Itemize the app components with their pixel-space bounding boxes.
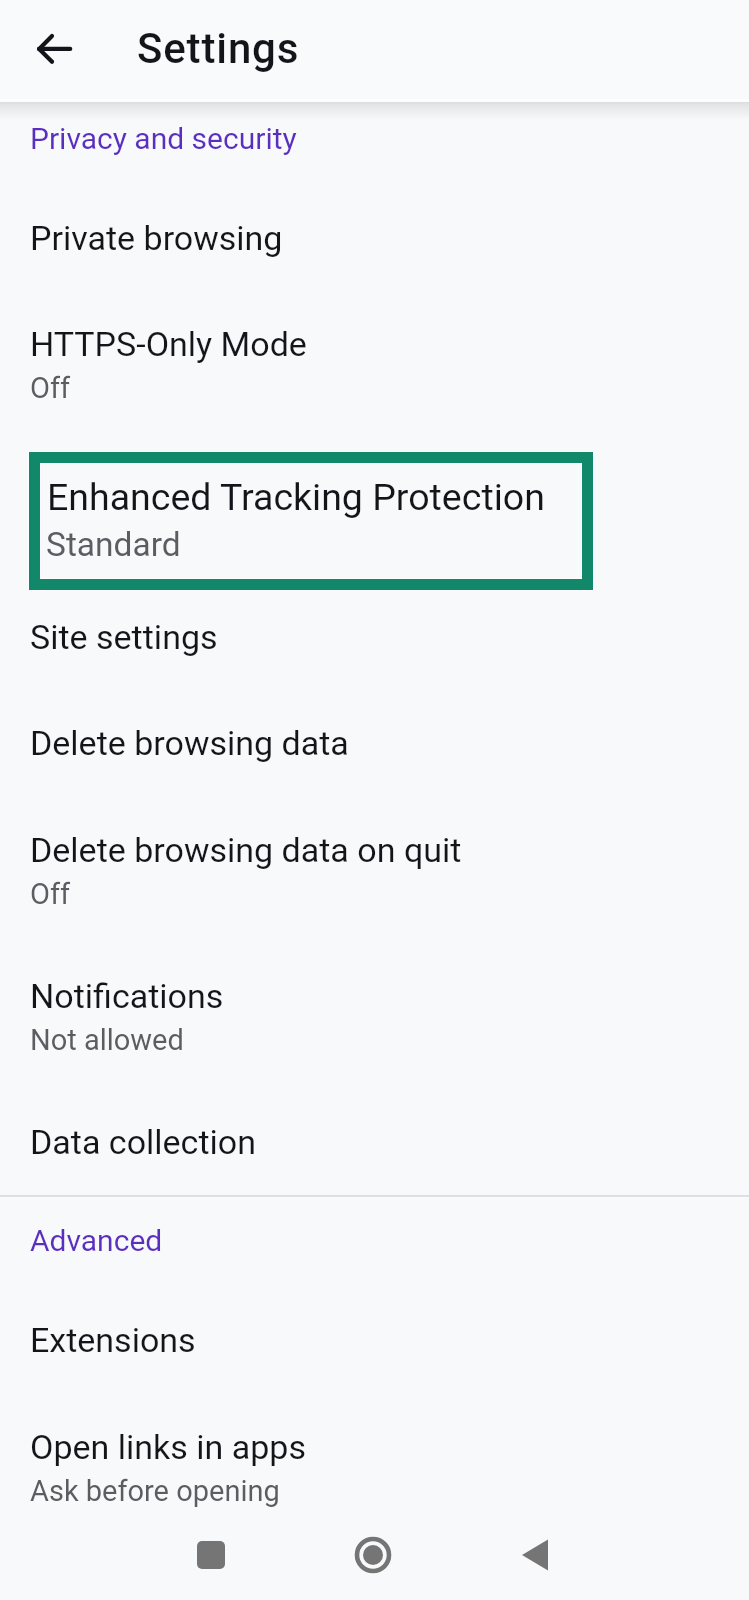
button[interactable]: Enhanced Tracking Protection <box>28 451 594 591</box>
button[interactable]: Home <box>323 1510 423 1600</box>
staticText: Data collection <box>30 1122 256 1162</box>
staticText: Extensions <box>30 1320 196 1360</box>
staticText: Delete browsing data <box>30 723 349 763</box>
button[interactable]: HTTPS-Only Mode <box>0 310 749 418</box>
button[interactable]: Notifications <box>0 961 749 1069</box>
button[interactable]: Open links in apps <box>0 1412 749 1512</box>
staticText: Advanced <box>30 1223 163 1258</box>
staticText: Site settings <box>30 617 218 657</box>
button[interactable]: Data collection <box>0 1107 749 1187</box>
button[interactable]: Private browsing <box>0 202 749 310</box>
staticText: Standard <box>46 525 181 564</box>
staticText: Private browsing <box>30 218 283 258</box>
button[interactable]: Extensions <box>0 1305 749 1411</box>
staticText: Privacy and security <box>30 121 297 156</box>
staticText: Delete browsing data on quit <box>30 830 462 870</box>
staticText: Not allowed <box>30 1023 184 1057</box>
staticText: Enhanced Tracking Protection <box>47 475 545 519</box>
staticText: Settings <box>137 24 300 73</box>
staticText: Ask before opening <box>30 1474 280 1508</box>
button[interactable]: Delete browsing data <box>0 708 749 814</box>
staticText: Open links in apps <box>30 1427 306 1467</box>
button[interactable]: Back <box>485 1510 585 1600</box>
staticText: Off <box>30 877 71 911</box>
button[interactable]: Site settings <box>0 602 749 708</box>
button[interactable]: Recent apps <box>161 1510 261 1600</box>
button[interactable]: Delete browsing data on quit <box>0 815 749 923</box>
staticText: Notifications <box>30 976 224 1016</box>
button[interactable]: Navigate up <box>24 21 84 81</box>
staticText: Off <box>30 371 71 405</box>
staticText: HTTPS-Only Mode <box>30 324 307 364</box>
